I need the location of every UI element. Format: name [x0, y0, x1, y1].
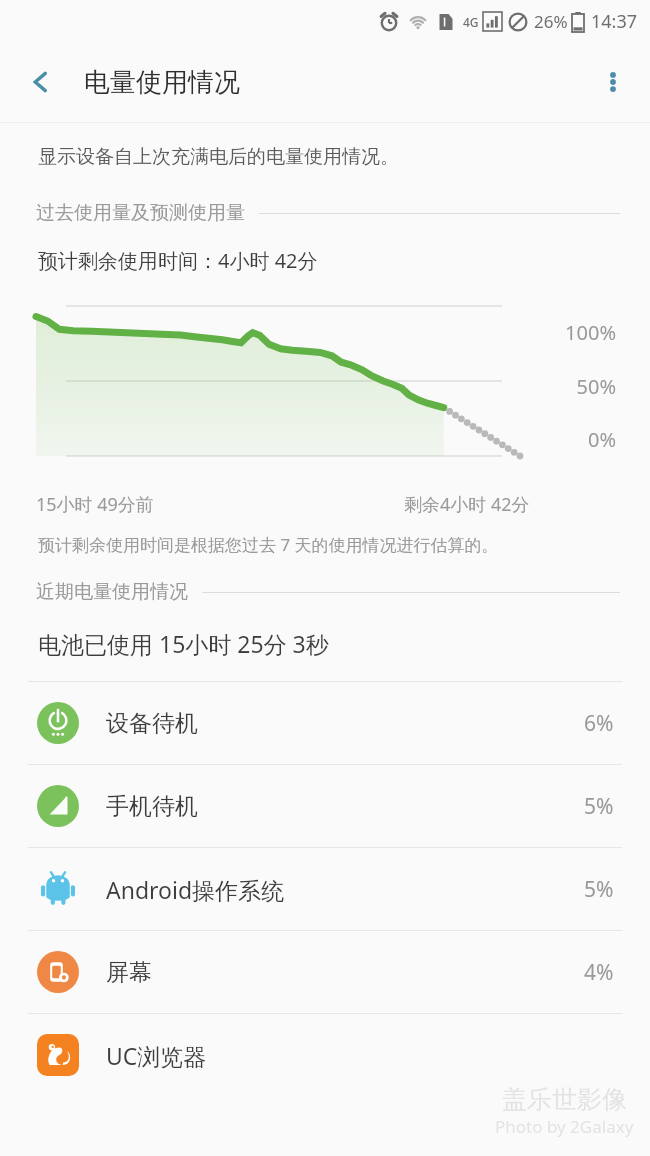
- staticText: 过去使用量及预测使用量: [36, 201, 245, 225]
- staticText: 100%: [565, 319, 616, 346]
- staticText: 近期电量使用情况: [36, 580, 188, 604]
- staticText: UC浏览器: [106, 1040, 207, 1071]
- staticText: 显示设备自上次充满电后的电量使用情况。: [38, 145, 399, 169]
- staticText: 电量使用情况: [84, 66, 240, 99]
- staticText: 5%: [584, 875, 614, 904]
- staticText: Android操作系统: [106, 874, 285, 905]
- staticText: 4G: [463, 14, 479, 30]
- staticText: 26%: [534, 10, 568, 33]
- button[interactable]: 屏幕: [0, 931, 650, 1013]
- staticText: 手机待机: [106, 792, 198, 821]
- staticText: 设备待机: [106, 709, 198, 738]
- button[interactable]: 设备待机: [0, 682, 650, 764]
- staticText: 剩余4小时 42分: [404, 492, 530, 517]
- staticText: 6%: [584, 709, 614, 738]
- staticText: 14:37: [591, 9, 638, 34]
- staticText: Photo by 2Galaxy: [495, 1115, 634, 1138]
- staticText: 盖乐世影像: [502, 1084, 627, 1115]
- button[interactable]: UC浏览器: [0, 1014, 650, 1096]
- staticText: 0%: [587, 426, 616, 453]
- staticText: 15小时 49分前: [36, 492, 154, 517]
- staticText: 4%: [584, 958, 614, 987]
- button[interactable]: More options: [586, 55, 640, 109]
- staticText: 预计剩余使用时间：4小时 42分: [38, 247, 318, 274]
- staticText: 屏幕: [106, 958, 152, 987]
- staticText: 5%: [584, 792, 614, 821]
- button[interactable]: 手机待机: [0, 765, 650, 847]
- button[interactable]: Back: [14, 55, 68, 109]
- staticText: 电池已使用 15小时 25分 3秒: [38, 628, 329, 659]
- staticText: 预计剩余使用时间是根据您过去 7 天的使用情况进行估算的。: [38, 533, 499, 556]
- button[interactable]: Android操作系统: [0, 848, 650, 930]
- staticText: 50%: [576, 373, 616, 400]
